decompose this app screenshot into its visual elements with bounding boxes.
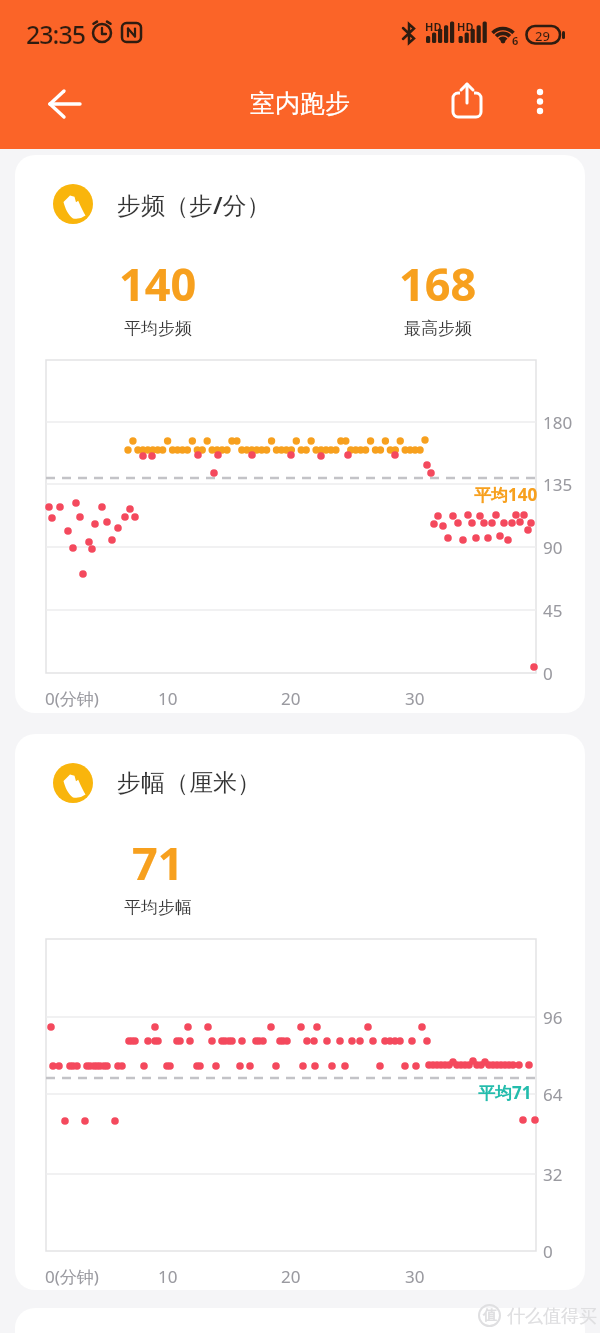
staticText: 什么值得买	[507, 1305, 597, 1328]
staticText: 值	[483, 1307, 497, 1325]
staticText: 180	[543, 411, 573, 434]
staticText: 96	[543, 1006, 563, 1029]
staticText: 平均71	[478, 1081, 532, 1104]
staticText: 0	[543, 662, 553, 685]
staticText: 步频（步/分）	[117, 188, 271, 221]
staticText: 10	[158, 687, 178, 710]
staticText: 140	[119, 253, 197, 314]
staticText: 29	[535, 27, 550, 45]
staticText: 168	[399, 253, 477, 314]
staticText: 室内跑步	[0, 88, 600, 119]
staticText: 135	[543, 473, 573, 496]
staticText: 45	[543, 599, 563, 622]
staticText: 30	[405, 687, 425, 710]
staticText: 0	[543, 1240, 553, 1263]
staticText: 0(分钟)	[45, 1265, 99, 1288]
staticText: 0(分钟)	[45, 687, 99, 710]
button[interactable]	[444, 78, 492, 126]
staticText: 20	[281, 1265, 301, 1288]
staticText: HD	[457, 19, 474, 34]
staticText: HD	[425, 19, 442, 34]
staticText: 平均步频	[124, 318, 192, 339]
staticText: 10	[158, 1265, 178, 1288]
button[interactable]	[520, 78, 560, 126]
button[interactable]	[38, 76, 94, 132]
staticText: 30	[405, 1265, 425, 1288]
staticText: 平均步幅	[124, 897, 192, 918]
staticText: 6	[512, 33, 519, 48]
staticText: 最高步频	[404, 318, 472, 339]
staticText: 64	[543, 1083, 563, 1106]
staticText: 23:35	[26, 17, 86, 51]
staticText: 32	[543, 1163, 563, 1186]
staticText: 平均140	[474, 483, 538, 506]
staticText: 71	[132, 832, 184, 893]
staticText: 步幅（厘米）	[117, 768, 261, 798]
staticText: 20	[281, 687, 301, 710]
staticText: 90	[543, 536, 563, 559]
